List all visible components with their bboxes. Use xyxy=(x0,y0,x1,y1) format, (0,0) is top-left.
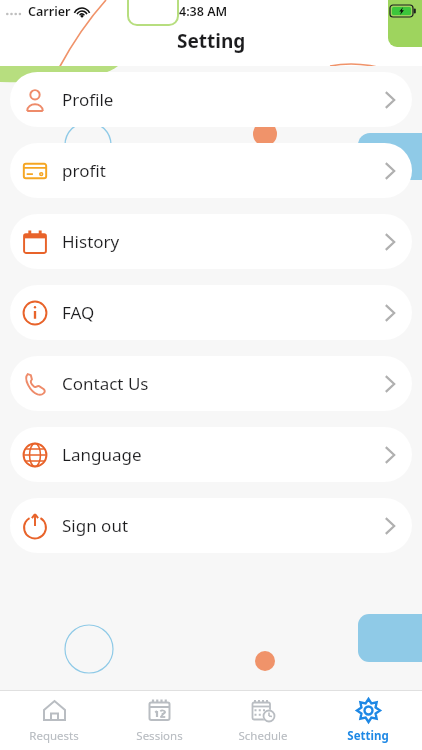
staticText: Schedule xyxy=(238,728,288,744)
button[interactable]: Schedule xyxy=(213,691,313,750)
staticText: Carrier xyxy=(28,3,71,20)
staticText: Sign out xyxy=(62,514,129,537)
staticText: Contact Us xyxy=(62,372,149,395)
staticText: Language xyxy=(62,443,142,466)
staticText: Sessions xyxy=(136,728,183,744)
staticText: 4:38 AM xyxy=(179,3,228,20)
staticText: Setting xyxy=(347,728,389,744)
button[interactable]: Profile xyxy=(10,72,412,127)
button[interactable]: History xyxy=(10,214,412,269)
button[interactable]: Language xyxy=(10,427,412,482)
staticText: FAQ xyxy=(62,301,95,324)
staticText: History xyxy=(62,230,120,253)
button[interactable]: Contact Us xyxy=(10,356,412,411)
button[interactable]: profit xyxy=(10,143,412,198)
staticText: Profile xyxy=(62,88,114,111)
staticText: profit xyxy=(62,159,106,182)
button[interactable]: FAQ xyxy=(10,285,412,340)
button[interactable]: Setting xyxy=(318,691,418,750)
button[interactable]: Sign out xyxy=(10,498,412,553)
button[interactable]: Requests xyxy=(4,691,104,750)
staticText: Requests xyxy=(29,728,79,744)
staticText: Setting xyxy=(177,28,246,54)
button[interactable]: Sessions xyxy=(109,691,209,750)
